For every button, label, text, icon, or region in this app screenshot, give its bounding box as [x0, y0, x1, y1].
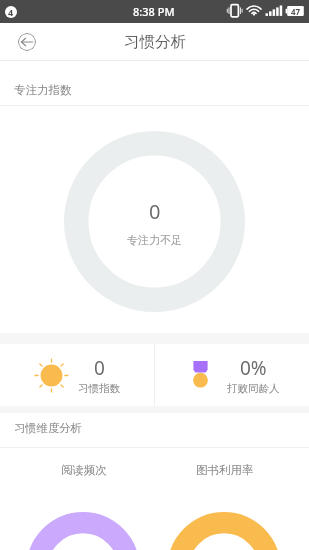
button[interactable]: Back	[18, 33, 36, 51]
staticText: 8:38 PM	[133, 4, 175, 19]
button[interactable]	[25, 344, 77, 406]
staticText: 图书利用率	[196, 463, 254, 477]
staticText: 专注力不足	[127, 233, 182, 247]
button[interactable]	[174, 344, 226, 406]
staticText: 0	[149, 198, 161, 225]
staticText: 打败同龄人	[227, 382, 280, 395]
staticText: 习惯分析	[124, 32, 186, 52]
staticText: 47	[291, 6, 301, 16]
button[interactable]: 阅读频次	[39, 462, 129, 478]
staticText: 习惯维度分析	[14, 421, 82, 435]
button[interactable]: 图书利用率	[180, 462, 270, 478]
staticText: 习惯指数	[78, 382, 120, 395]
staticText: 专注力指数	[14, 83, 72, 97]
staticText: 阅读频次	[61, 463, 107, 477]
staticText: 0%	[240, 355, 267, 381]
staticText: 0	[94, 355, 105, 381]
staticText: 4	[8, 6, 14, 18]
